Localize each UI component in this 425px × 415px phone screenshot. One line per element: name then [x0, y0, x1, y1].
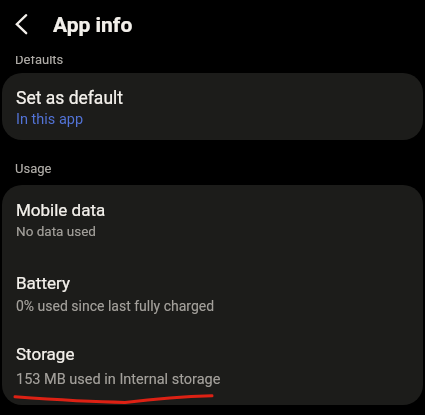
- staticText: Battery: [16, 273, 70, 293]
- button[interactable]: [0, 3, 44, 47]
- staticText: Mobile data: [16, 200, 106, 220]
- staticText: In this app: [16, 111, 84, 128]
- staticText: Storage: [16, 344, 75, 364]
- staticText: Usage: [15, 161, 52, 176]
- button[interactable]: [2, 325, 423, 405]
- button[interactable]: [2, 185, 423, 251]
- staticText: No data used: [16, 223, 96, 239]
- button[interactable]: Set as default: [2, 73, 423, 140]
- staticText: 0% used since last fully charged: [16, 298, 215, 314]
- staticText: App info: [53, 13, 133, 38]
- staticText: 153 MB used in Internal storage: [16, 371, 221, 388]
- staticText: Set as default: [16, 88, 124, 109]
- button[interactable]: [2, 251, 423, 325]
- staticText: Defaults: [15, 52, 64, 67]
